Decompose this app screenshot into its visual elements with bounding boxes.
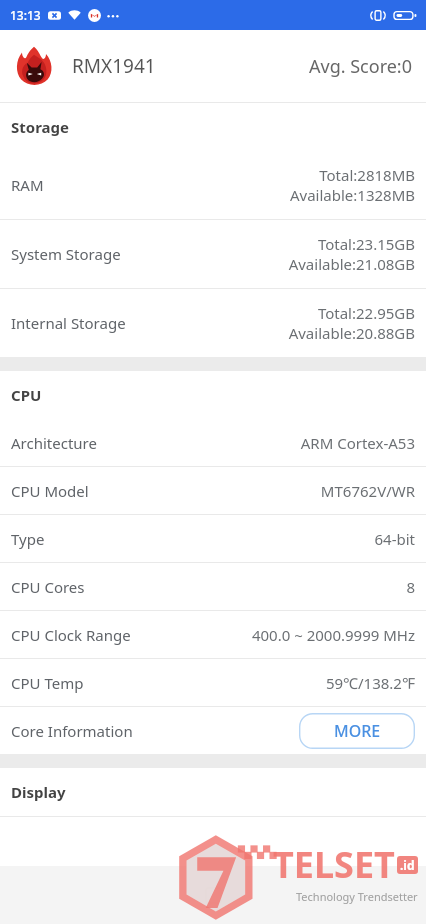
- button[interactable]: Internal Storage: [0, 289, 426, 357]
- staticText: 8: [406, 577, 415, 597]
- staticText: Technology Trendsetter: [296, 889, 418, 904]
- staticText: 400.0 ~ 2000.9999 MHz: [251, 625, 415, 645]
- button[interactable]: MORE: [299, 713, 415, 749]
- staticText: MORE: [334, 720, 381, 742]
- staticText: 13:13: [10, 7, 41, 23]
- staticText: ARM Cortex-A53: [300, 433, 415, 453]
- staticText: CPU Temp: [11, 673, 84, 693]
- button[interactable]: CPU Clock Range: [0, 611, 426, 658]
- staticText: CPU: [11, 385, 42, 405]
- staticText: Storage: [11, 117, 69, 137]
- staticText: Display: [11, 782, 66, 802]
- staticText: Architecture: [11, 433, 97, 453]
- staticText: Available:20.88GB: [288, 323, 415, 343]
- button[interactable]: System Storage: [0, 220, 426, 288]
- button[interactable]: CPU Cores: [0, 563, 426, 610]
- button[interactable]: RAM: [0, 151, 426, 219]
- staticText: RAM: [11, 175, 44, 195]
- staticText: .id: [400, 857, 415, 873]
- staticText: Core Information: [11, 721, 133, 741]
- staticText: MT6762V/WR: [320, 481, 415, 501]
- staticText: Total:23.15GB: [317, 234, 415, 254]
- staticText: Avg. Score:0: [309, 54, 412, 79]
- button[interactable]: AnTuTu logo: [14, 46, 54, 86]
- button[interactable]: CPU Model: [0, 467, 426, 514]
- staticText: Available:21.08GB: [288, 254, 415, 274]
- staticText: System Storage: [11, 244, 121, 264]
- staticText: 64-bit: [374, 529, 415, 549]
- staticText: Type: [11, 529, 45, 549]
- staticText: Total:2818MB: [319, 165, 415, 185]
- staticText: Available:1328MB: [289, 185, 415, 205]
- button[interactable]: Architecture: [0, 419, 426, 466]
- staticText: Total:22.95GB: [317, 303, 415, 323]
- button[interactable]: CPU Temp: [0, 659, 426, 706]
- staticText: TELSET: [273, 840, 395, 889]
- staticText: RMX1941: [72, 53, 156, 79]
- button[interactable]: Type: [0, 515, 426, 562]
- button[interactable]: Recents: [191, 873, 235, 917]
- staticText: CPU Model: [11, 481, 89, 501]
- staticText: CPU Clock Range: [11, 625, 131, 645]
- staticText: Internal Storage: [11, 313, 126, 333]
- staticText: CPU Cores: [11, 577, 85, 597]
- staticText: 59℃/138.2℉: [325, 673, 415, 693]
